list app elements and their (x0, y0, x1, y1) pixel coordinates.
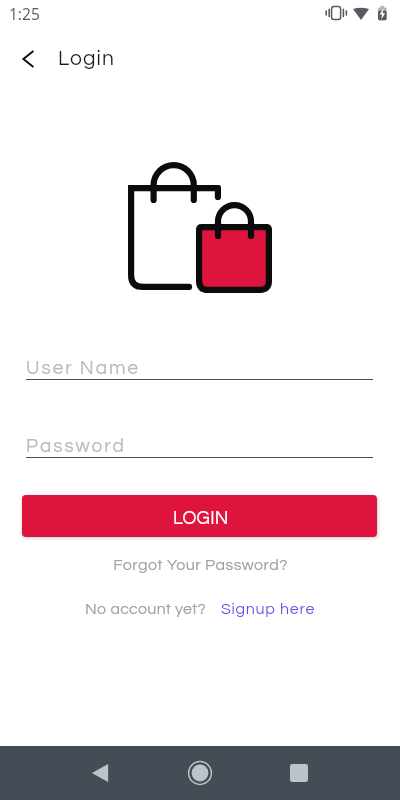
button[interactable]: Home (176, 749, 224, 797)
staticText: No account yet? (85, 601, 206, 617)
button[interactable]: Forgot Your Password? (113, 557, 288, 573)
button[interactable]: Password (26, 432, 373, 460)
button[interactable]: LOGIN (22, 495, 377, 537)
button[interactable]: Recent apps (275, 749, 323, 797)
button[interactable]: Back (80, 749, 128, 797)
button[interactable]: User Name (26, 354, 373, 382)
staticText: Login (58, 48, 115, 70)
staticText: Forgot Your Password? (113, 557, 288, 573)
button[interactable]: Back (10, 40, 48, 78)
staticText: User Name (26, 358, 141, 378)
button[interactable]: Signup here (221, 601, 316, 617)
staticText: 1:25 (9, 3, 40, 24)
staticText: Password (26, 436, 126, 456)
staticText: LOGIN (173, 509, 229, 528)
